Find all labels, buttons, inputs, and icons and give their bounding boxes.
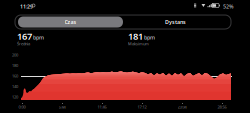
staticText: Czas	[64, 18, 76, 26]
staticText: 11:29	[20, 3, 33, 10]
staticText: Dystans	[165, 18, 186, 26]
staticText: Maksimum	[128, 41, 149, 46]
button[interactable]: Dystans	[123, 16, 228, 27]
staticText: 5:44	[58, 104, 65, 110]
staticText: Średnia	[17, 41, 30, 46]
staticText: 160	[12, 73, 18, 79]
staticText: 181	[128, 30, 143, 42]
staticText: 11:46	[97, 104, 106, 110]
button[interactable]: Czas	[18, 16, 123, 27]
staticText: 52%	[223, 3, 234, 10]
staticText: 17:12	[137, 104, 146, 110]
staticText: 140	[12, 84, 18, 89]
staticText: 0:00	[18, 104, 25, 110]
staticText: 23:04	[177, 104, 186, 110]
staticText: 120	[12, 94, 18, 100]
staticText: 167	[17, 30, 32, 42]
staticText: bpm	[144, 34, 155, 41]
staticText: 200	[12, 52, 18, 58]
staticText: 180	[12, 63, 18, 68]
staticText: 28:56	[217, 104, 226, 110]
staticText: bpm	[33, 34, 44, 41]
